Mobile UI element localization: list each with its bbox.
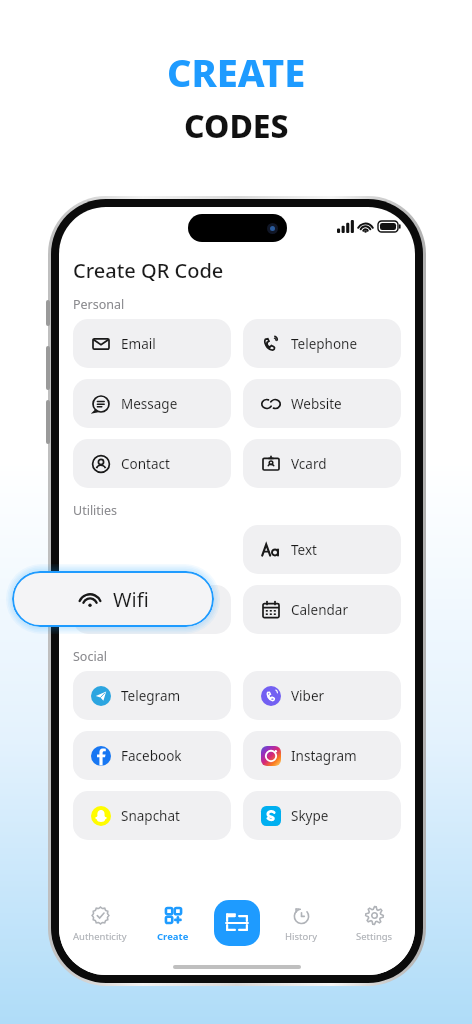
staticText: Personal [73,296,125,313]
button[interactable]: Vcard [243,439,401,488]
staticText: Message [121,395,178,413]
staticText: Wifi [113,586,149,613]
button[interactable]: Website [243,379,401,428]
staticText: Snapchat [121,807,180,825]
staticText: Settings [356,930,393,943]
staticText: Skype [291,807,329,825]
staticText: Instagram [291,747,357,765]
button[interactable]: Calendar [243,585,401,634]
staticText: CODES [184,104,289,148]
staticText: Create QR Code [73,257,224,284]
button[interactable]: Settings [343,903,405,945]
button[interactable]: Message [73,379,231,428]
staticText: Authenticity [73,930,127,943]
button[interactable]: Create [142,903,204,945]
staticText: Website [291,395,342,413]
button[interactable]: Contact [73,439,231,488]
button[interactable]: Instagram [243,731,401,780]
staticText: Facebook [121,747,182,765]
staticText: Telegram [121,687,181,705]
staticText: History [285,930,317,943]
button[interactable]: Email [73,319,231,368]
button[interactable]: Authenticity [69,903,131,945]
staticText: Utilities [73,502,118,519]
staticText: Viber [291,687,325,705]
button[interactable]: Telegram [73,671,231,720]
button[interactable]: Text [243,525,401,574]
button[interactable]: Wifi [12,571,214,627]
button[interactable]: Skype [243,791,401,840]
staticText: Email [121,335,156,353]
button[interactable]: Location [73,585,231,634]
staticText: Location [121,601,176,619]
button[interactable]: History [270,903,332,945]
staticText: Contact [121,455,170,473]
staticText: Create [157,930,189,943]
button[interactable]: Snapchat [73,791,231,840]
staticText: Calendar [291,601,348,619]
staticText: Text [291,541,317,559]
staticText: Social [73,648,107,665]
staticText: Telephone [291,335,358,353]
button[interactable]: Viber [243,671,401,720]
staticText: CREATE [167,46,306,98]
staticText: Vcard [291,455,327,473]
button[interactable]: Facebook [73,731,231,780]
button[interactable]: Telephone [243,319,401,368]
button[interactable]: Scan code [214,900,260,946]
